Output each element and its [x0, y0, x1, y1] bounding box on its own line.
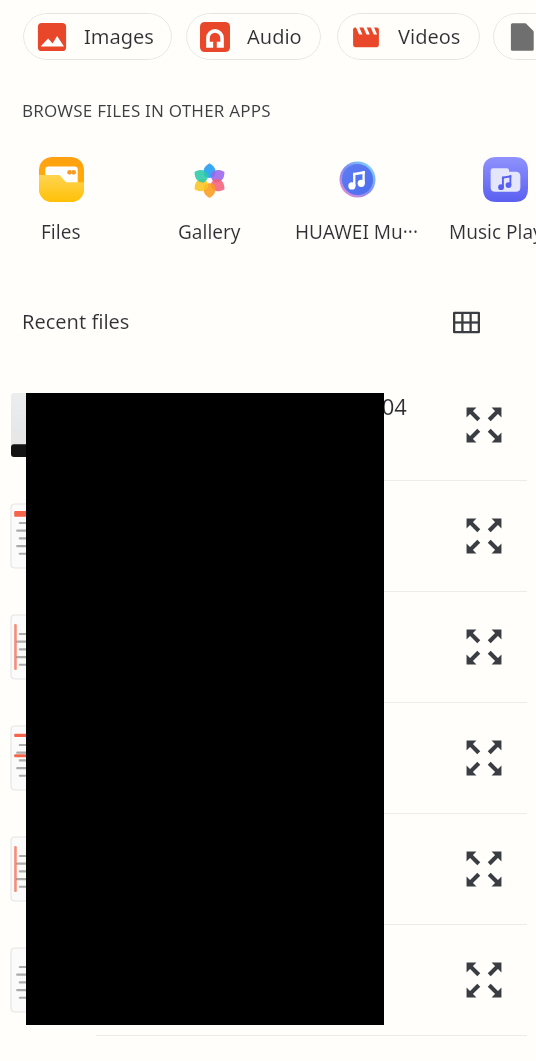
- button[interactable]: Project proposal draft.docx: [0, 481, 536, 591]
- button[interactable]: Expand: [462, 514, 506, 558]
- button[interactable]: Audio: [186, 13, 321, 60]
- button[interactable]: Docs: [493, 13, 536, 60]
- staticText: Screenshot_20240517_164304: [96, 391, 407, 421]
- staticText: Audio: [247, 23, 302, 50]
- button[interactable]: Expand: [462, 736, 506, 780]
- staticText: Music Player: [449, 219, 536, 245]
- button[interactable]: Budget overview.xlsx: [0, 925, 536, 1035]
- button[interactable]: Expand: [462, 958, 506, 1002]
- staticText: Recent files: [22, 308, 130, 335]
- button[interactable]: Screenshot_20240517_164304: [0, 370, 536, 480]
- button[interactable]: Grid view: [444, 300, 488, 344]
- staticText: HUAWEI Mu···: [295, 219, 419, 245]
- staticText: Files: [41, 219, 81, 245]
- button[interactable]: Expand: [462, 625, 506, 669]
- button[interactable]: Invoice 2024-0381.pdf: [0, 814, 536, 924]
- button[interactable]: Videos: [337, 13, 480, 60]
- staticText: BROWSE FILES IN OTHER APPS: [22, 99, 271, 122]
- button[interactable]: Meeting notes 05.docx: [0, 703, 536, 813]
- staticText: Videos: [398, 23, 461, 50]
- button[interactable]: Expand: [462, 847, 506, 891]
- staticText: Images: [84, 23, 154, 50]
- button[interactable]: Gallery: [135, 157, 283, 245]
- button[interactable]: Music Player: [431, 157, 536, 245]
- button[interactable]: Monthly report Q2.pdf: [0, 592, 536, 702]
- button[interactable]: Images: [23, 13, 172, 60]
- button[interactable]: Files: [0, 157, 135, 245]
- staticText: Gallery: [178, 219, 241, 245]
- button[interactable]: Expand: [462, 403, 506, 447]
- button[interactable]: HUAWEI Mu···: [283, 157, 431, 245]
